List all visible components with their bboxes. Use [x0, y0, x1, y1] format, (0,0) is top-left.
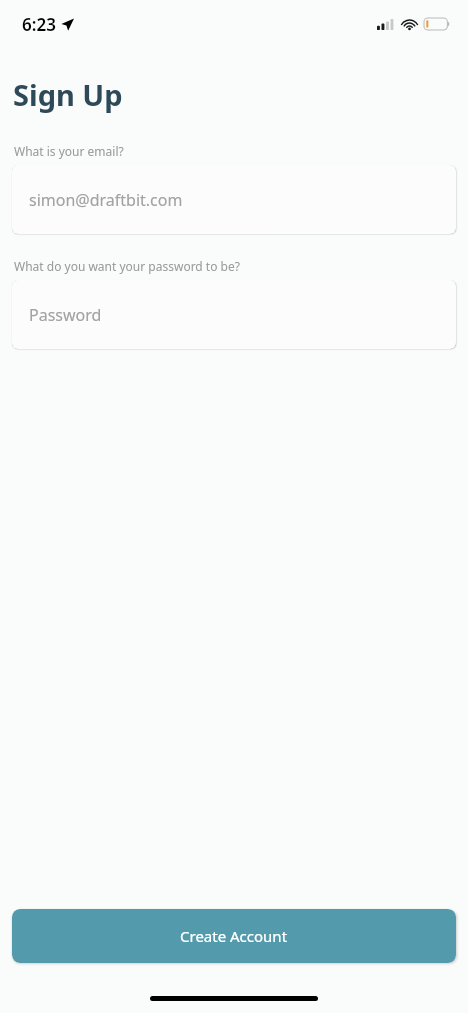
button[interactable]: Create Account: [12, 909, 456, 963]
other: Location: [61, 18, 74, 31]
staticText: Create Account: [180, 926, 288, 946]
button[interactable]: simon@draftbit.com: [12, 165, 456, 234]
staticText: What do you want your password to be?: [14, 258, 240, 274]
staticText: Sign Up: [13, 75, 123, 114]
other: Wi-Fi: [401, 18, 418, 30]
staticText: What is your email?: [14, 143, 124, 159]
button[interactable]: Password: [12, 280, 456, 349]
staticText: simon@draftbit.com: [29, 189, 183, 211]
other: Battery: [424, 18, 450, 30]
other: Cellular signal: [377, 19, 395, 30]
staticText: Password: [29, 304, 102, 326]
staticText: 6:23: [22, 13, 56, 36]
